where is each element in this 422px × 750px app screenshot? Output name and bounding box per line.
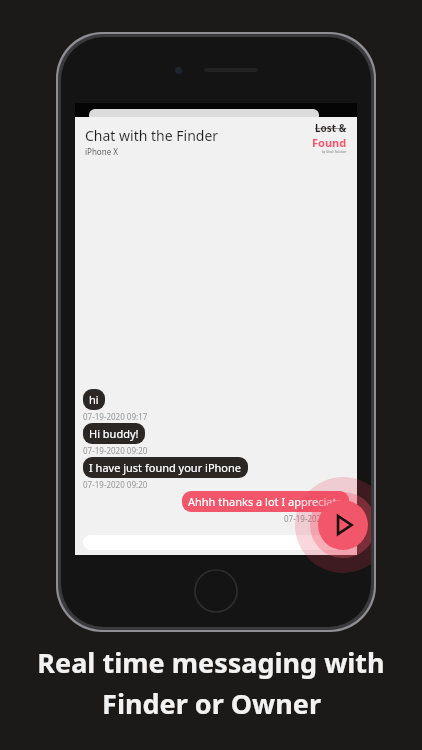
button[interactable]: Send <box>295 477 371 573</box>
button[interactable]: Home <box>194 569 238 613</box>
staticText: 07-19-2020 09:20 <box>83 445 148 456</box>
staticText: 07-19-2020 09:20 <box>83 479 148 490</box>
staticText: hi <box>89 392 99 407</box>
staticText: Real time messaging with <box>37 644 385 681</box>
staticText: Ahhh thanks a lot I appreciate <box>188 494 343 509</box>
staticText: iPhone X <box>85 146 118 157</box>
staticText: 07-19-2020 09:17 <box>83 411 148 422</box>
staticText: Hi buddy! <box>89 426 139 441</box>
staticText: 07-19-2020 09:21 <box>284 513 349 524</box>
button[interactable] <box>83 535 349 550</box>
staticText: by Glock Solution <box>322 150 347 154</box>
button[interactable]: I have just found your iPhone <box>83 457 248 478</box>
button[interactable]: Hi buddy! <box>83 423 145 444</box>
staticText: Found <box>312 135 347 150</box>
staticText: Finder or Owner <box>102 685 321 722</box>
staticText: I have just found your iPhone <box>89 460 242 475</box>
staticText: Chat with the Finder <box>85 126 219 145</box>
button[interactable]: hi <box>83 389 105 410</box>
staticText: Lost & <box>315 121 347 135</box>
button[interactable]: Ahhh thanks a lot I appreciate <box>182 491 349 512</box>
